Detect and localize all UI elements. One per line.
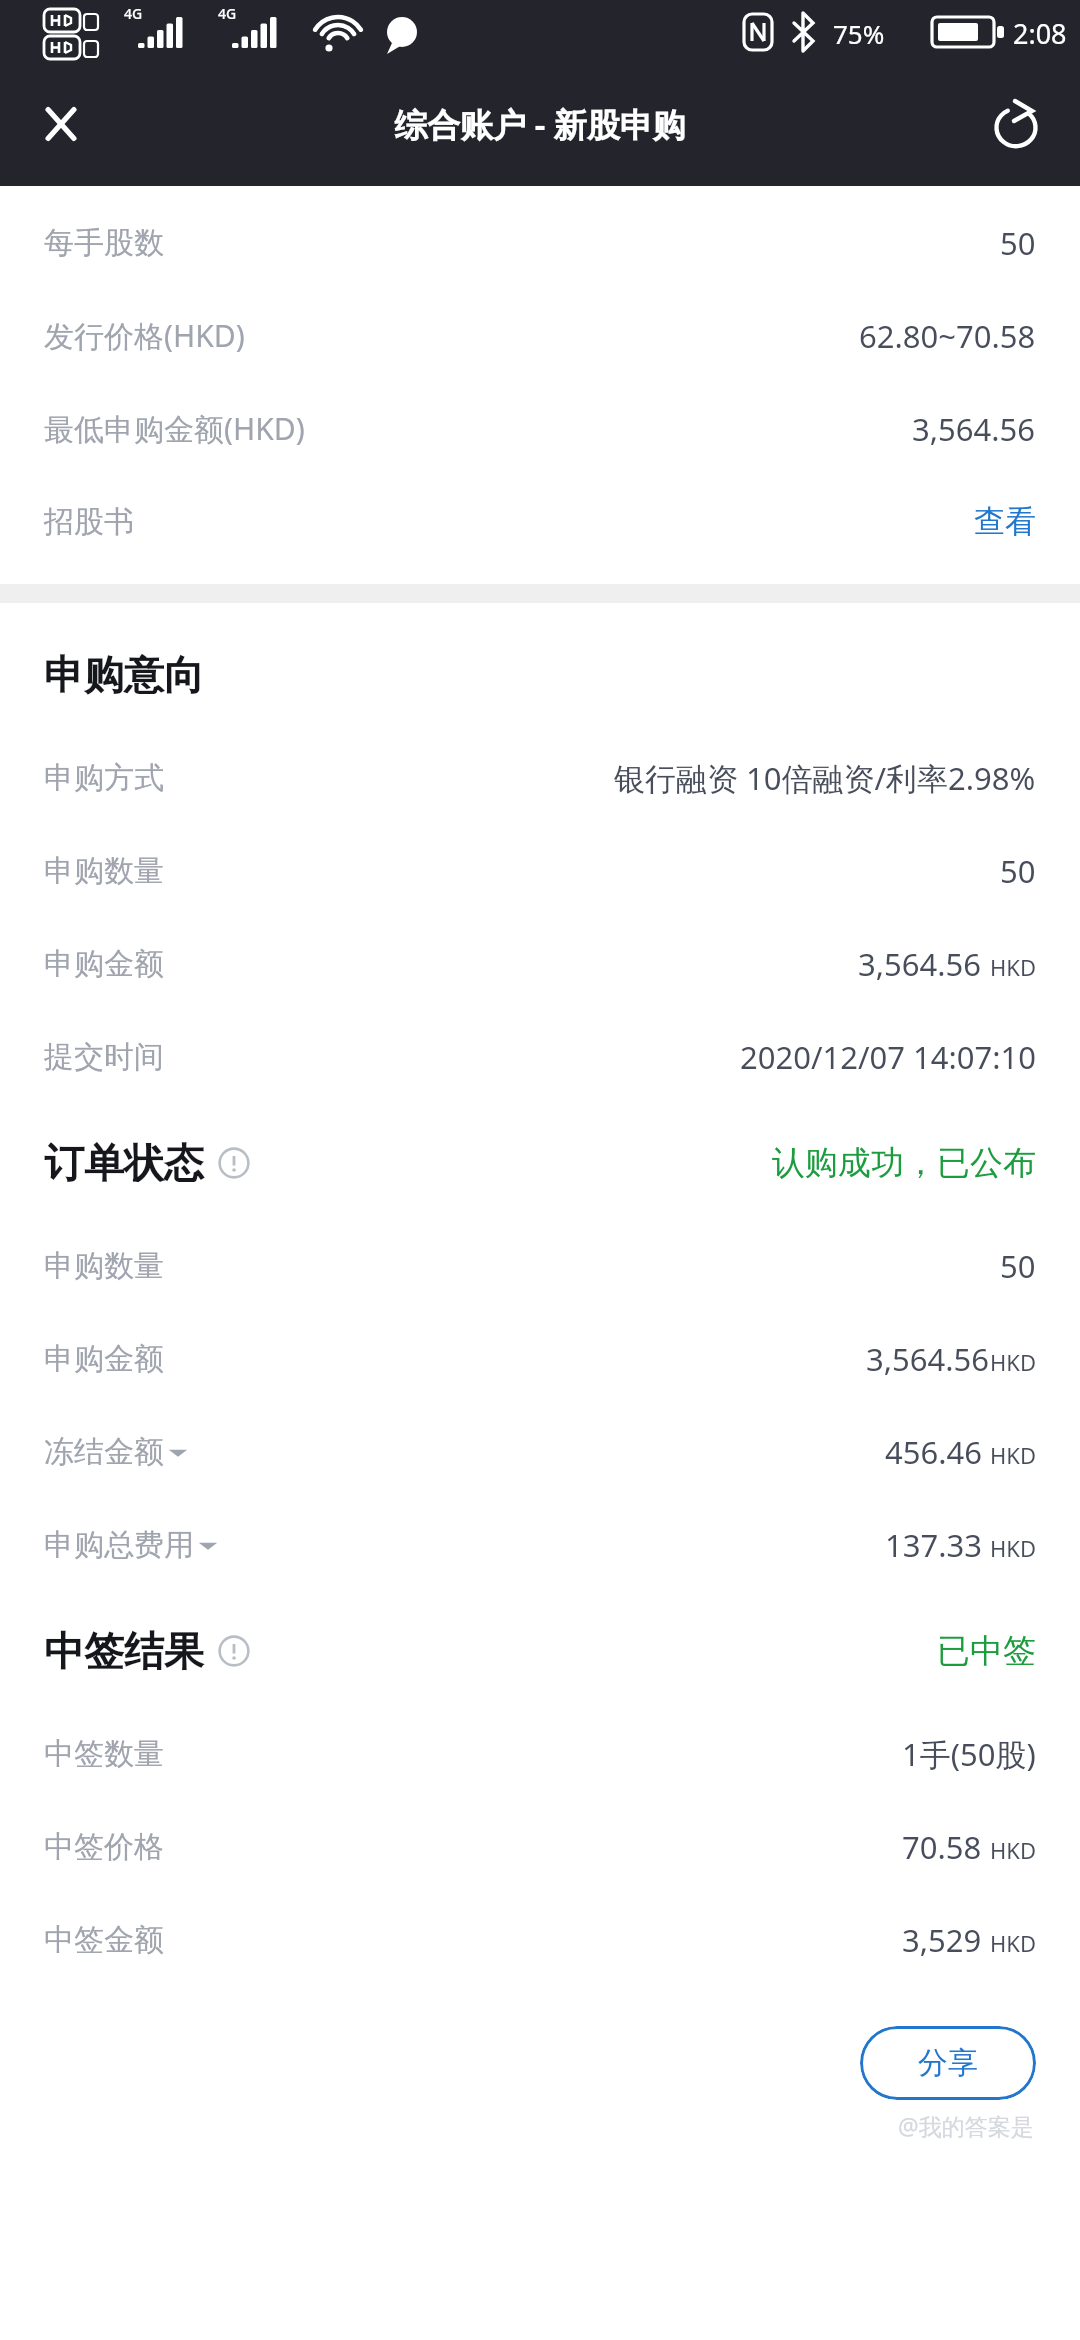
button[interactable]: Info [218,1147,250,1179]
staticText: 中签价格 [44,1828,164,1866]
staticText: 70.58 [902,1826,982,1868]
staticText: 提交时间 [44,1038,164,1076]
button[interactable]: Info [218,1635,250,1667]
staticText: 3,564.56 [866,1338,990,1380]
staticText: 冻结金额 [44,1433,164,1471]
staticText: 中签结果 [44,1626,204,1676]
staticText: 50 [1000,850,1036,892]
staticText: 申购方式 [44,759,164,797]
staticText: 查看 [974,502,1036,541]
staticText: 申购意向 [44,650,204,700]
staticText: 50 [1000,1245,1036,1287]
button[interactable]: 分享 [860,2026,1036,2100]
staticText: 申购数量 [44,852,164,890]
staticText: 4G [218,4,237,23]
staticText: 银行融资 10倍融资/利率2.98% [614,757,1036,799]
staticText: 137.33 [885,1524,982,1566]
staticText: 申购金额 [44,1340,164,1378]
staticText: 申购金额 [44,945,164,983]
staticText: 分享 [918,2044,978,2082]
staticText: 4G [124,4,143,23]
staticText: 3,564.56 [858,943,982,985]
button[interactable]: Refresh [976,84,1056,164]
staticText: 已中签 [937,1630,1036,1672]
staticText: 62.80~70.58 [859,315,1036,357]
staticText: @我的答案是 [898,2110,1034,2141]
staticText: 中签金额 [44,1921,164,1959]
staticText: 发行价格(HKD) [44,315,245,356]
staticText: HKD [990,1347,1036,1377]
staticText: 最低申购金额(HKD) [44,408,305,449]
staticText: 3,529 [902,1919,982,1961]
staticText: 申购总费用 [44,1526,194,1564]
staticText: 中签数量 [44,1735,164,1773]
staticText: 2020/12/07 14:07:10 [740,1036,1036,1078]
staticText: 认购成功，已公布 [772,1142,1036,1184]
staticText: HKD [990,1533,1036,1563]
staticText: HKD [990,1835,1036,1865]
staticText: 1手(50股) [902,1733,1036,1775]
staticText: HKD [990,952,1036,982]
staticText: 综合账户 - 新股申购 [394,102,686,147]
staticText: HKD [990,1928,1036,1958]
staticText: 50 [1000,222,1036,264]
staticText: HKD [990,1440,1036,1470]
staticText: 订单状态 [44,1138,204,1188]
staticText: 申购数量 [44,1247,164,1285]
staticText: 75% [833,16,885,51]
staticText: 456.46 [885,1431,982,1473]
staticText: 3,564.56 [912,408,1036,450]
button[interactable]: Close [22,85,100,163]
button[interactable]: 招股书 [0,475,1080,568]
staticText: 招股书 [44,503,134,541]
staticText: 每手股数 [44,224,164,262]
staticText: 2:08 [1013,15,1067,52]
